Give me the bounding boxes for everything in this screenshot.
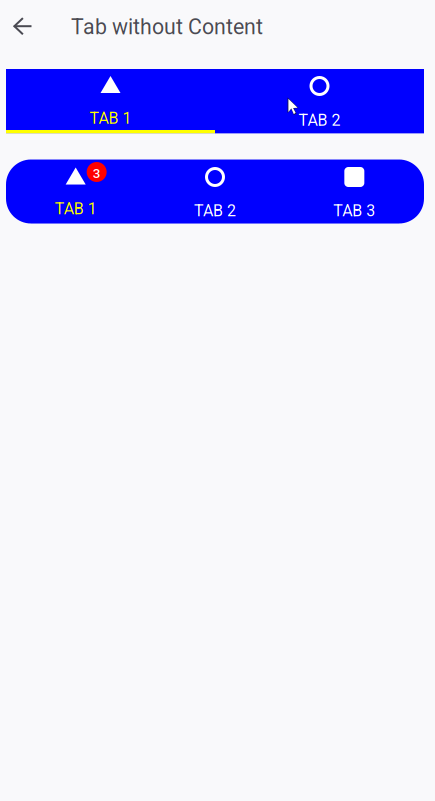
button[interactable]: Back (1, 5, 45, 49)
staticText: Tab without Content (71, 14, 263, 39)
staticText: TAB 2 (298, 111, 340, 130)
staticText: 3 (93, 166, 101, 181)
staticText: TAB 1 (89, 109, 131, 128)
button[interactable]: 3 (6, 159, 145, 223)
staticText: TAB 1 (55, 199, 97, 218)
staticText: TAB 2 (194, 201, 236, 220)
staticText: TAB 3 (333, 201, 375, 220)
button[interactable]: TAB 2 (145, 159, 285, 223)
button[interactable]: TAB 3 (285, 159, 424, 223)
button[interactable]: TAB 1 (6, 69, 215, 130)
button[interactable]: TAB 2 (215, 69, 424, 130)
